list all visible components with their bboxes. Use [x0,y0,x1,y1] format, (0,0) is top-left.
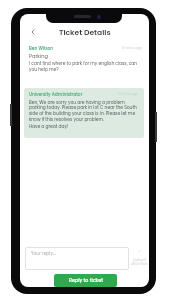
staticText: Attach Photo [131,262,148,266]
staticText: Your reply... [31,250,56,256]
staticText: University Administrator [29,91,83,97]
staticText: 15 mins ago [122,45,143,50]
staticText: 10 mins ago [118,91,139,96]
staticText: I cant find where to park for my english… [29,60,143,72]
button[interactable]: Reply to ticket [54,274,117,287]
staticText: Reply to ticket [69,277,103,284]
staticText: Parking [29,53,48,60]
staticText: Ben Wilson [29,45,54,51]
staticText: Ben, We are sorry you are having a probl… [29,99,139,123]
button[interactable]: Attach Photo [130,248,148,266]
button[interactable]: Back [27,26,39,38]
staticText: Have a great day! [29,123,69,129]
staticText: Ticket Details [59,27,111,38]
button[interactable]: Your reply... [25,247,129,270]
staticText: (optional) [133,258,146,262]
